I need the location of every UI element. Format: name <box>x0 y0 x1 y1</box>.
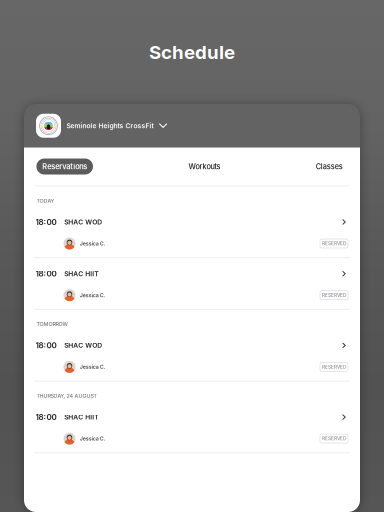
staticText: TODAY <box>36 197 54 204</box>
staticText: Jessica C. <box>80 292 106 298</box>
staticText: SHAC WOD <box>64 218 102 226</box>
staticText: 18:00 <box>36 412 57 422</box>
button[interactable]: Workouts <box>188 162 220 171</box>
staticText: RESERVED <box>322 364 346 370</box>
staticText: RESERVED <box>322 292 346 298</box>
staticText: Jessica C. <box>80 435 106 442</box>
staticText: RESERVED <box>322 436 346 441</box>
staticText: SHAC HIIT <box>64 413 98 421</box>
staticText: 18:00 <box>36 217 57 227</box>
staticText: SHAC WOD <box>64 341 102 349</box>
button[interactable]: Classes <box>316 162 343 171</box>
staticText: TOMORROW <box>36 321 67 327</box>
button[interactable]: Seminole Heights CrossFit <box>24 104 360 147</box>
button[interactable]: Reservations <box>36 158 93 174</box>
staticText: 18:00 <box>36 269 57 279</box>
staticText: RESERVED <box>322 241 346 246</box>
staticText: Jessica C. <box>80 240 106 247</box>
staticText: SHAC HIIT <box>64 270 98 278</box>
staticText: Classes <box>316 162 343 171</box>
staticText: Workouts <box>188 162 220 171</box>
staticText: Seminole Heights CrossFit <box>67 122 154 130</box>
staticText: Reservations <box>42 162 87 171</box>
button[interactable]: 18:00 <box>24 335 360 356</box>
staticText: 18:00 <box>36 341 57 350</box>
staticText: Schedule <box>149 41 235 64</box>
button[interactable]: 18:00 <box>24 407 360 428</box>
staticText: Jessica C. <box>80 364 106 370</box>
button[interactable]: 18:00 <box>24 263 360 284</box>
staticText: THURSDAY, 24 AUGUST <box>36 393 96 399</box>
button[interactable]: 18:00 <box>24 211 360 232</box>
